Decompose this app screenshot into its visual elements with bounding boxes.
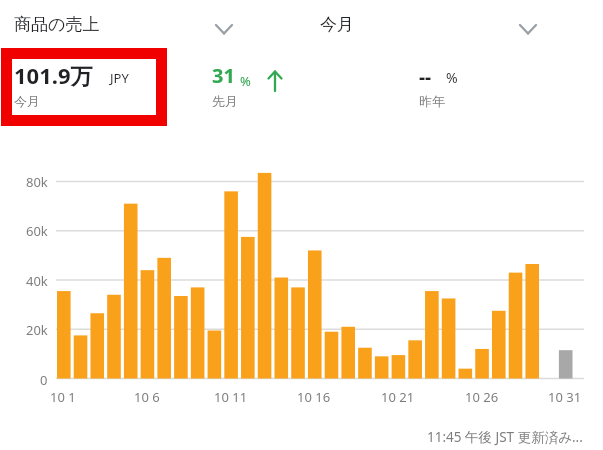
staticText: 先月 xyxy=(212,93,238,109)
staticText: 10 26 xyxy=(465,388,499,406)
staticText: 昨年 xyxy=(419,93,445,109)
staticText: 80k xyxy=(26,173,48,191)
staticText: % xyxy=(446,68,458,87)
button[interactable]: Select period xyxy=(512,16,544,42)
staticText: 31 xyxy=(212,62,235,89)
staticText: 40k xyxy=(26,272,48,290)
staticText: 0 xyxy=(40,371,48,389)
staticText: 10 6 xyxy=(134,388,160,406)
button[interactable]: Select metric xyxy=(208,16,240,42)
staticText: 商品の売上 xyxy=(14,14,100,35)
staticText: 11:45 午後 JST 更新済み... xyxy=(427,428,583,446)
staticText: 10 31 xyxy=(548,388,582,406)
staticText: -- xyxy=(419,64,432,90)
staticText: JPY xyxy=(110,69,129,87)
staticText: 20k xyxy=(26,321,48,339)
staticText: 101.9万 xyxy=(14,60,93,90)
staticText: 10 21 xyxy=(381,388,415,406)
staticText: 10 11 xyxy=(214,388,248,406)
staticText: % xyxy=(240,72,251,90)
staticText: 10 1 xyxy=(50,388,76,406)
staticText: 今月 xyxy=(14,93,40,109)
staticText: 60k xyxy=(26,222,48,240)
staticText: 今月 xyxy=(320,14,354,35)
staticText: 10 16 xyxy=(297,388,331,406)
